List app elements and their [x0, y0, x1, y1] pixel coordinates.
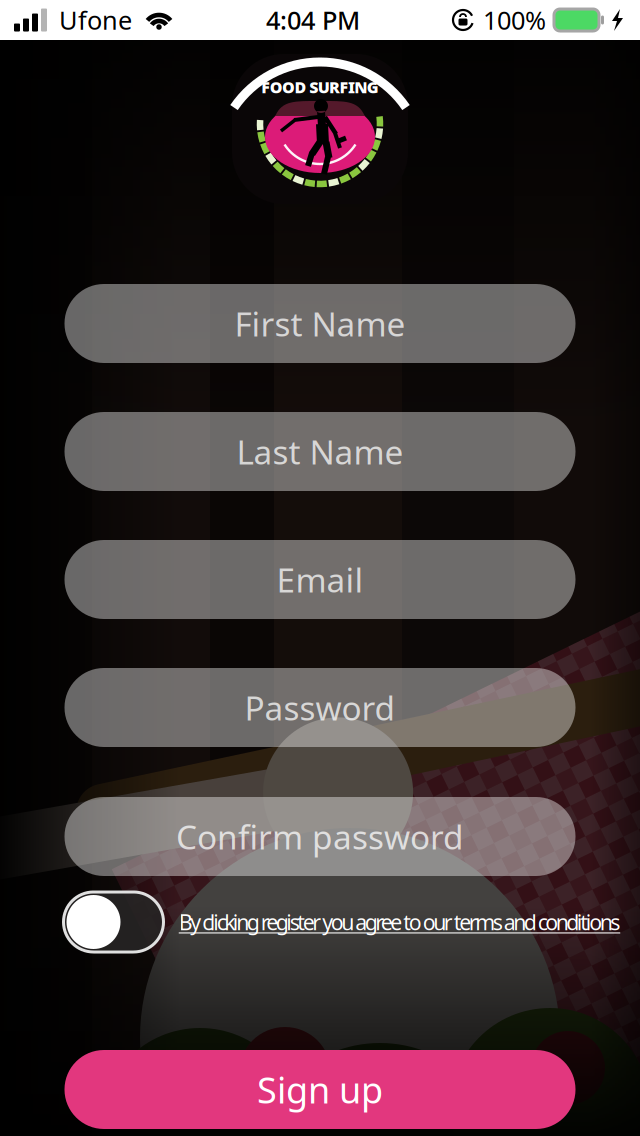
- staticText: Password: [244, 685, 395, 730]
- button[interactable]: Last Name: [64, 412, 575, 491]
- button[interactable]: First Name: [64, 284, 575, 363]
- button[interactable]: Email: [64, 540, 575, 619]
- button[interactable]: Sign up: [64, 1050, 575, 1129]
- staticText: By clicking register you agree to our te…: [179, 908, 620, 936]
- staticText: Ufone: [59, 3, 132, 37]
- button[interactable]: By clicking register you agree to our te…: [176, 905, 622, 939]
- staticText: Last Name: [236, 429, 403, 474]
- staticText: Sign up: [257, 1066, 383, 1113]
- staticText: 100%: [483, 3, 546, 37]
- staticText: 4:04 PM: [266, 3, 360, 37]
- staticText: Email: [276, 557, 363, 602]
- button[interactable]: Password: [64, 668, 575, 747]
- staticText: FOOD SURFING: [261, 76, 379, 98]
- button[interactable]: Agree to terms and conditions: [63, 892, 163, 952]
- staticText: Confirm password: [176, 814, 464, 859]
- button[interactable]: Confirm password: [64, 797, 575, 876]
- staticText: First Name: [234, 301, 405, 346]
